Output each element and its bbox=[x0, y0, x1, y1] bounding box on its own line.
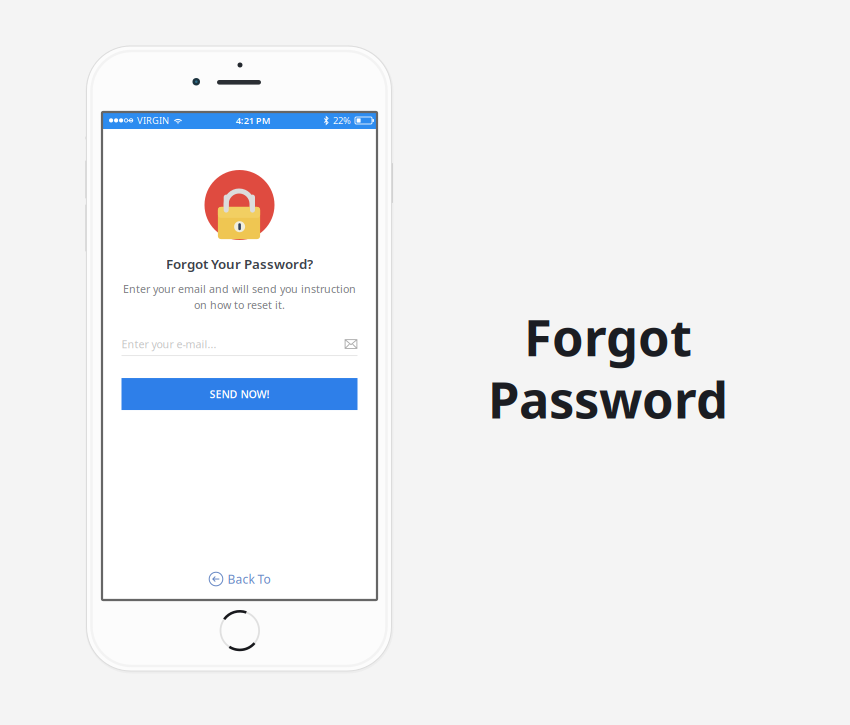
staticText: on how to reset it. bbox=[194, 298, 285, 312]
staticText: Enter your e-mail... bbox=[121, 337, 216, 351]
button[interactable]: Enter your e-mail bbox=[121, 333, 357, 356]
button[interactable]: Back To bbox=[204, 567, 274, 591]
staticText: Password bbox=[488, 365, 728, 433]
staticText: Enter your email and will send you instr… bbox=[123, 282, 356, 296]
staticText: Forgot Your Password? bbox=[166, 255, 313, 273]
staticText: VIRGIN bbox=[137, 114, 169, 127]
staticText: 22% bbox=[333, 114, 351, 127]
staticText: Back To bbox=[227, 571, 270, 587]
staticText: Forgot bbox=[524, 303, 692, 370]
staticText: 4:21 PM bbox=[236, 114, 271, 127]
staticText: SEND NOW! bbox=[209, 387, 269, 401]
button[interactable]: SEND NOW! bbox=[121, 378, 357, 410]
